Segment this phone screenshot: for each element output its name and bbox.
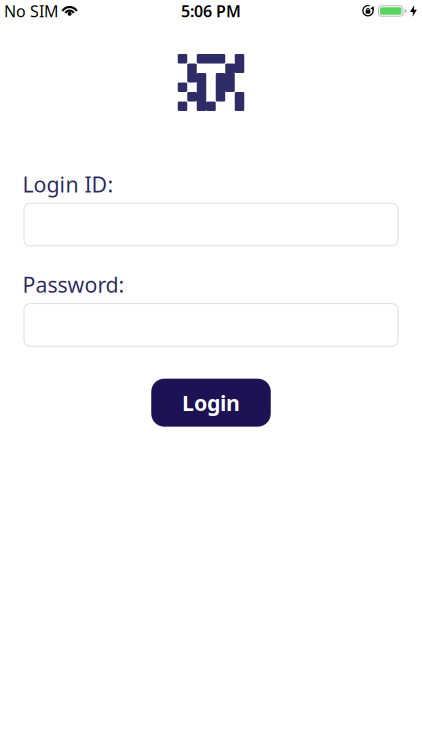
- button[interactable]: [24, 203, 398, 246]
- staticText: Password:: [22, 270, 124, 299]
- staticText: Login ID:: [22, 170, 113, 198]
- staticText: 5:06 PM: [181, 0, 241, 22]
- staticText: Login: [182, 388, 240, 417]
- button[interactable]: Login: [151, 379, 271, 427]
- staticText: No SIM: [4, 0, 59, 22]
